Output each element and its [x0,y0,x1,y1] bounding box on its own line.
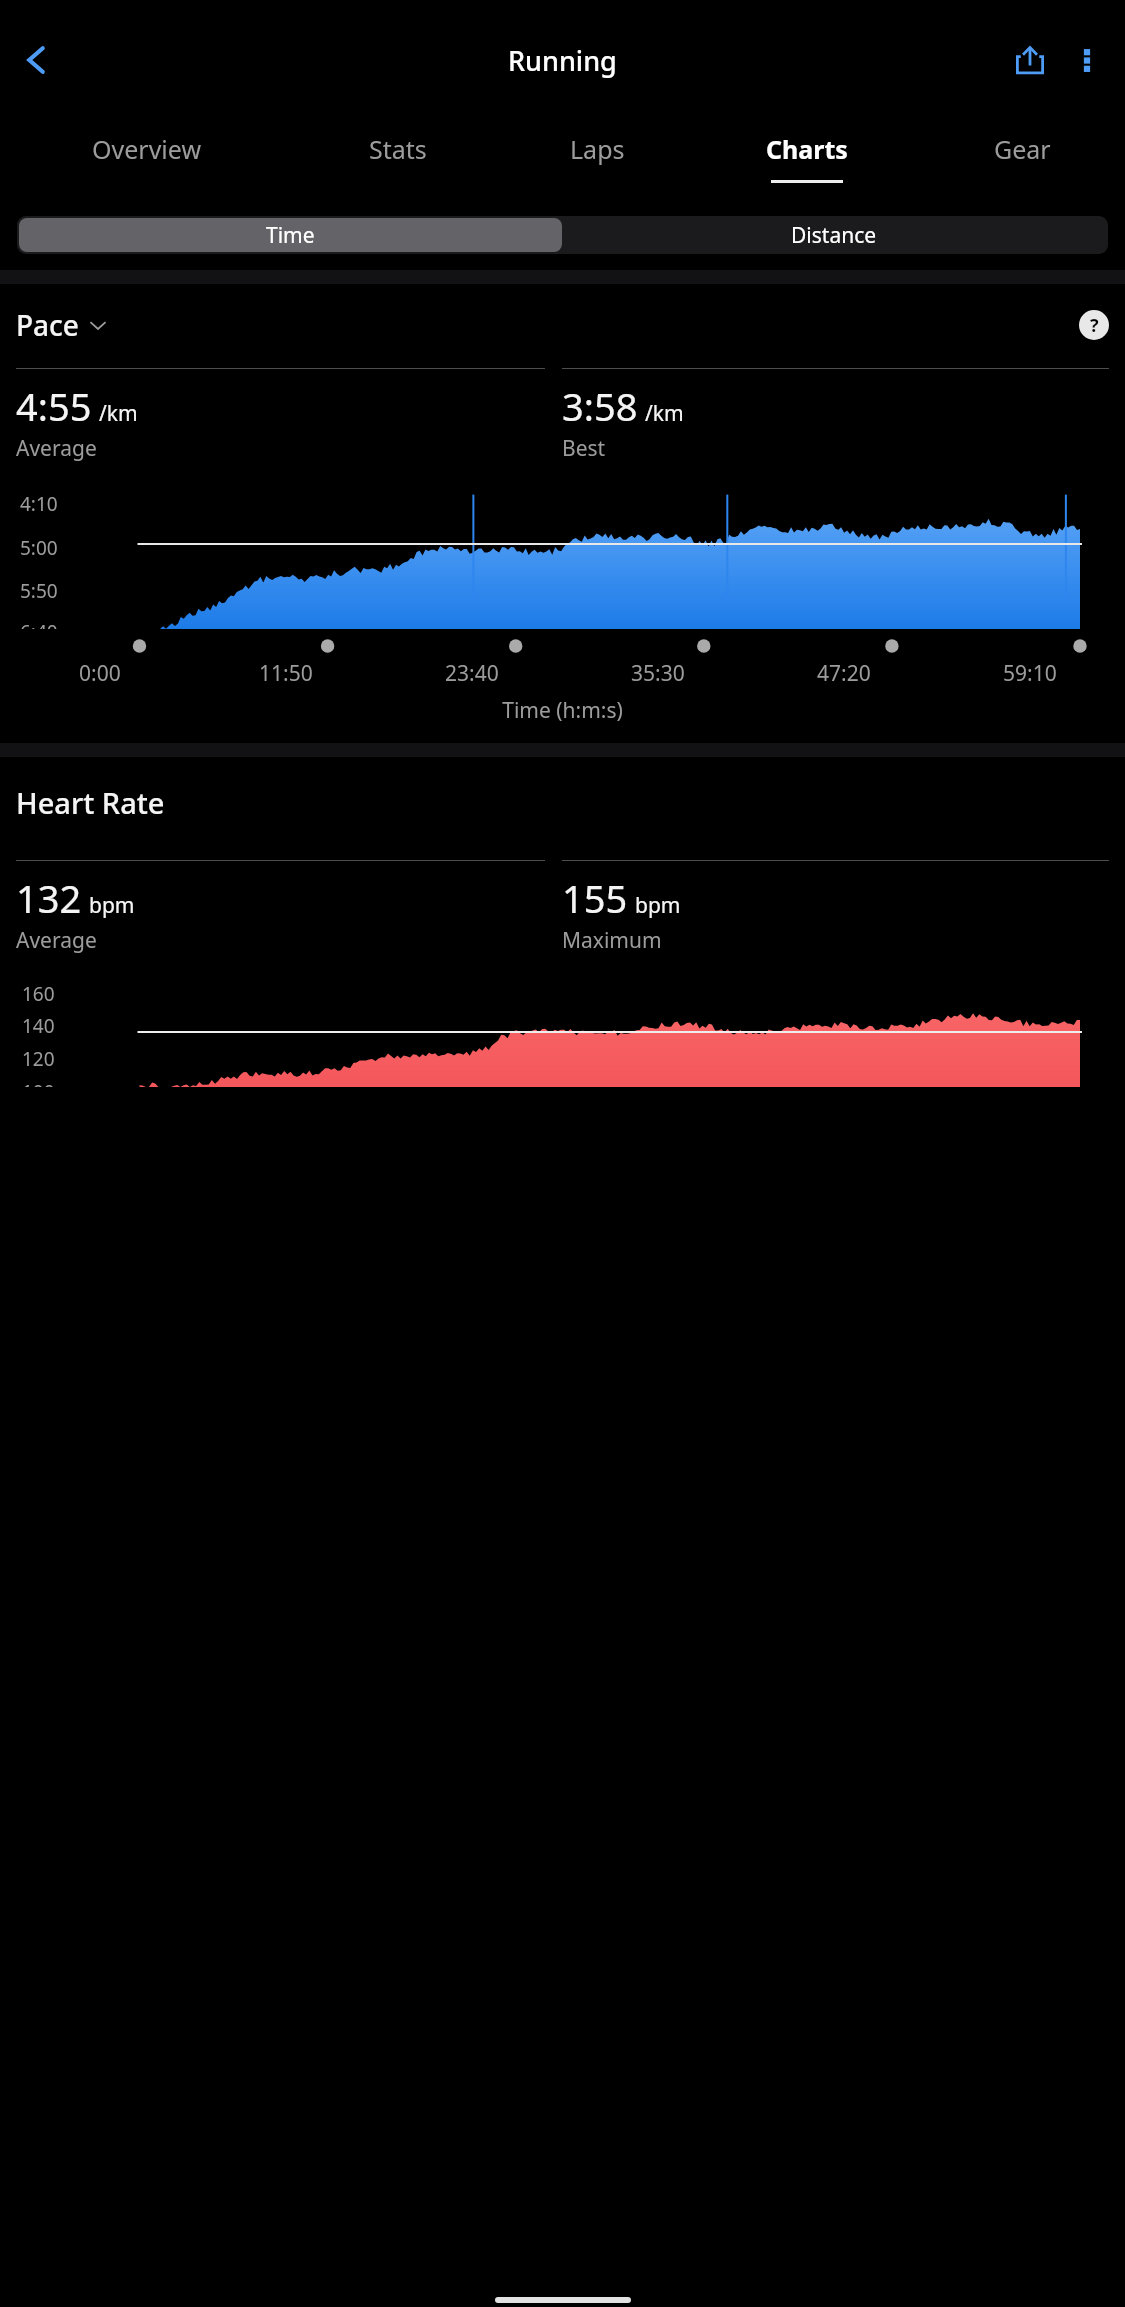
button[interactable]: Distance [562,218,1106,252]
staticText: ? [1090,313,1099,338]
staticText: 5:50 [20,578,58,604]
staticText: 5:00 [20,535,58,561]
staticText: Average [16,926,97,955]
button[interactable]: Overview [0,120,293,202]
staticText: Heart Rate [16,783,165,822]
staticText: Laps [570,132,625,166]
button[interactable]: Gear [920,120,1125,202]
staticText: Overview [92,132,202,166]
staticText: Time [266,221,315,250]
staticText: Running [508,42,617,79]
staticText: Maximum [562,926,662,955]
button[interactable]: Pace [16,306,107,344]
staticText: 11:50 [259,659,313,688]
staticText: Time (h:m:s) [0,696,1125,725]
staticText: Best [562,434,606,463]
staticText: 132 [16,872,82,924]
button[interactable]: Time [19,218,562,252]
button[interactable]: Laps [502,120,693,202]
button[interactable]: Share [1001,31,1059,89]
staticText: 155 [562,872,628,924]
staticText: 160 [22,981,55,1007]
button[interactable]: Stats [293,120,502,202]
staticText: 35:30 [631,659,685,688]
staticText: 120 [22,1046,55,1072]
staticText: Pace [16,306,79,344]
staticText: 4:55 [16,380,92,432]
staticText: Stats [369,132,427,166]
staticText: 23:40 [445,659,499,688]
staticText: /km [645,399,684,428]
staticText: Distance [791,221,877,250]
staticText: 3:58 [562,380,638,432]
button[interactable]: Back [8,32,64,88]
button[interactable]: Charts [693,120,920,202]
button[interactable]: Help [1079,310,1109,340]
staticText: 47:20 [817,659,871,688]
staticText: 100 [22,1079,55,1087]
staticText: 140 [22,1013,55,1039]
staticText: 0:00 [79,659,121,688]
staticText: 59:10 [1003,659,1057,688]
staticText: bpm [89,891,135,920]
staticText: bpm [635,891,681,920]
staticText: Gear [994,132,1051,166]
button[interactable]: More options [1059,32,1115,88]
staticText: 4:10 [20,491,58,517]
staticText: 6:40 [20,619,58,629]
staticText: Charts [766,132,848,166]
staticText: /km [99,399,138,428]
staticText: Average [16,434,97,463]
